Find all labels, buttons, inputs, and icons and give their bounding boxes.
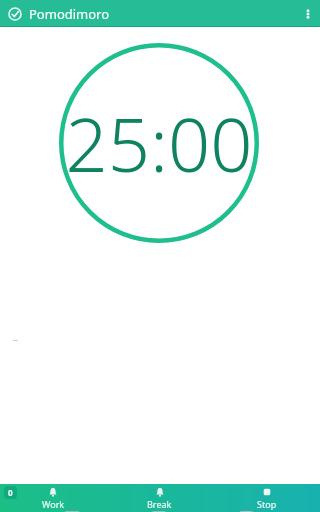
other: Pomodimoro logo xyxy=(8,7,22,21)
staticText: Pomodimoro xyxy=(29,5,110,23)
button[interactable]: Stop xyxy=(213,484,320,512)
staticText: 0 xyxy=(8,487,13,498)
button[interactable]: 0 xyxy=(4,486,17,499)
staticText: Stop xyxy=(257,498,277,510)
staticText: 25:00 xyxy=(65,93,253,194)
button[interactable]: Timer 25:00 xyxy=(59,43,259,243)
button[interactable]: Break xyxy=(106,484,213,512)
button[interactable]: More options xyxy=(296,2,320,26)
staticText: Break xyxy=(147,498,172,510)
button[interactable]: Work xyxy=(0,484,106,512)
staticText: Work xyxy=(42,498,65,510)
